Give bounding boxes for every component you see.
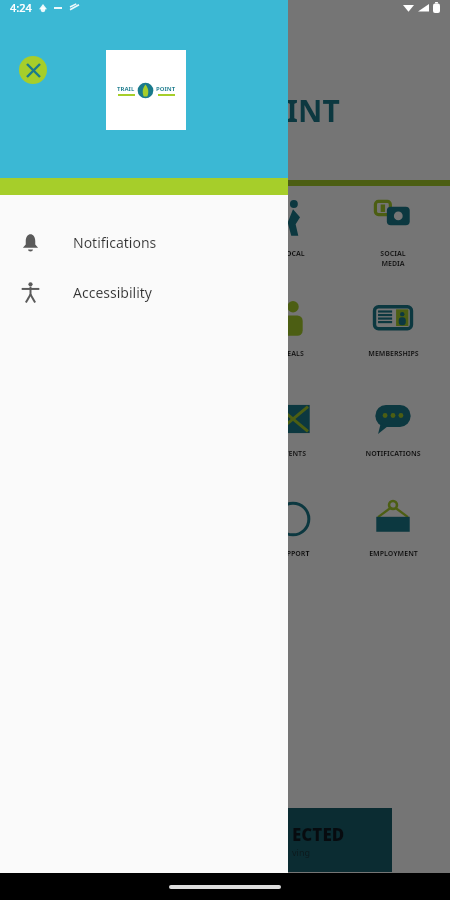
staticText: SUPPORT [277,549,310,559]
staticText: POINT [156,85,176,93]
staticText: ving [292,846,310,858]
staticText: NOTIFICATIONS [365,449,421,459]
button[interactable]: Close menu [19,56,47,84]
staticText: TRAIL [117,85,135,93]
staticText: ECTED [292,823,345,846]
staticText: EMPLOYMENT [369,549,418,559]
button[interactable]: Accessibility [0,267,288,317]
staticText: Accessibility [73,283,152,302]
staticText: LOCAL [282,249,305,259]
staticText: EVENTS [280,449,306,459]
staticText: TRAIL POINT [150,90,340,131]
button[interactable]: Notifications [0,217,288,267]
staticText: Notifications [73,233,157,252]
staticText: MEMBERSHIPS [368,349,419,359]
staticText: DEALS [282,349,304,359]
staticText: 4:24 [10,0,32,15]
staticText: SOCIAL MEDIA [380,249,406,269]
